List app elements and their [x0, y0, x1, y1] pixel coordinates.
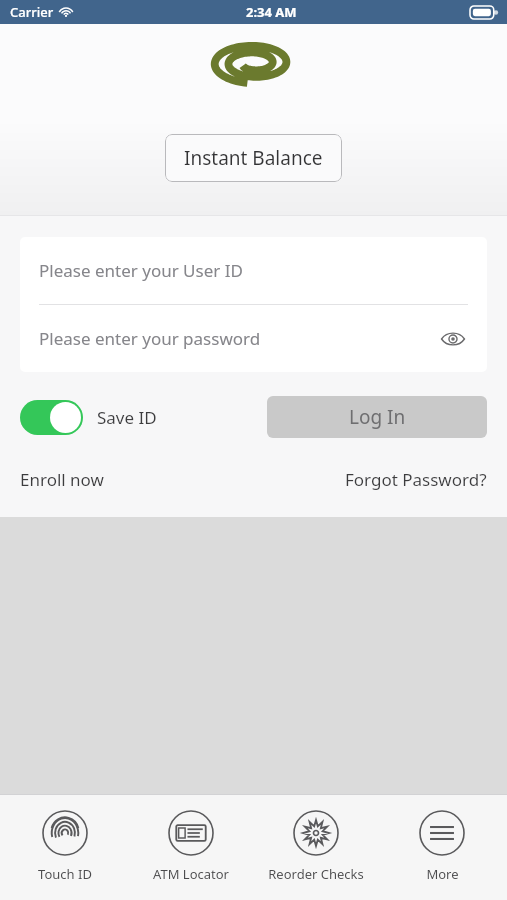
button[interactable]: Please enter your password [20, 305, 487, 372]
staticText: ATM Locator [153, 865, 229, 883]
staticText: Please enter your User ID [39, 259, 243, 282]
staticText: Instant Balance [184, 145, 323, 171]
button[interactable]: Log In [267, 396, 487, 438]
staticText: Forgot Password? [345, 468, 487, 491]
button[interactable]: Forgot Password? [345, 464, 487, 495]
staticText: 2:34 AM [246, 3, 297, 21]
staticText: Carrier [10, 3, 54, 21]
button[interactable]: ATM Locator [131, 795, 251, 883]
button[interactable]: Show password [438, 324, 468, 354]
button[interactable]: More [382, 795, 502, 883]
staticText: Log In [349, 404, 406, 430]
button[interactable]: Please enter your User ID [20, 237, 487, 304]
button[interactable]: Enroll now [20, 464, 104, 495]
button[interactable]: Save ID [20, 400, 157, 435]
button[interactable]: Instant Balance [165, 134, 342, 182]
staticText: Reorder Checks [268, 865, 364, 883]
staticText: Please enter your password [39, 327, 261, 350]
staticText: Save ID [97, 406, 157, 429]
button[interactable]: Touch ID [5, 795, 125, 883]
staticText: Enroll now [20, 468, 104, 491]
button[interactable]: Reorder Checks [256, 795, 376, 883]
staticText: Touch ID [38, 865, 92, 883]
staticText: More [426, 865, 459, 883]
